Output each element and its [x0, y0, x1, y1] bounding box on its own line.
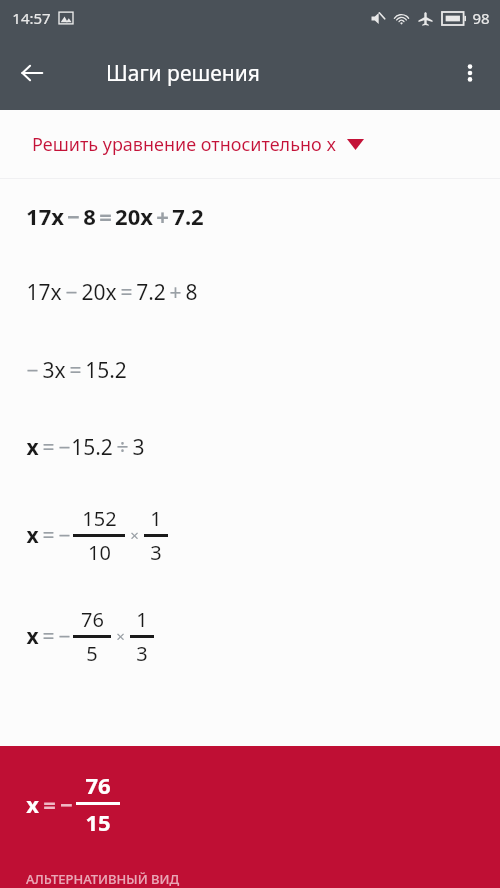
button[interactable]: x: [0, 746, 500, 888]
staticText: 76: [81, 606, 104, 633]
staticText: =: [43, 789, 56, 819]
staticText: 15.2: [71, 433, 113, 462]
staticText: 17x: [26, 278, 62, 307]
staticText: −: [67, 201, 80, 231]
staticText: Шаги решения: [106, 59, 260, 88]
button[interactable]: x: [0, 485, 500, 585]
staticText: Решить уравнение относительно x: [32, 132, 336, 157]
staticText: ÷: [116, 433, 129, 462]
staticText: 152: [82, 505, 117, 532]
staticText: x: [26, 521, 39, 550]
staticText: 7.2: [136, 278, 166, 307]
staticText: x: [26, 789, 39, 819]
staticText: 20x: [81, 278, 117, 307]
staticText: 17x: [26, 201, 64, 231]
staticText: =: [42, 521, 55, 550]
staticText: 14:57: [12, 8, 51, 28]
staticText: =: [42, 622, 55, 651]
staticText: 15.2: [85, 356, 127, 385]
staticText: 20x: [115, 201, 153, 231]
staticText: 15: [85, 807, 111, 837]
staticText: 3: [132, 433, 145, 462]
staticText: 3: [150, 539, 162, 566]
staticText: +: [169, 278, 182, 307]
staticText: 5: [86, 640, 98, 667]
staticText: −: [65, 278, 78, 307]
button[interactable]: More options: [446, 49, 494, 97]
button[interactable]: Back: [8, 49, 56, 97]
staticText: 3: [136, 640, 148, 667]
staticText: 98: [472, 8, 490, 28]
staticText: =: [120, 278, 133, 307]
staticText: +: [156, 201, 169, 231]
staticText: ×: [116, 626, 125, 646]
staticText: АЛЬТЕРНАТИВНЫЙ ВИД: [26, 870, 180, 888]
staticText: 7.2: [172, 201, 204, 231]
button[interactable]: Решить уравнение относительно x: [0, 110, 500, 178]
button[interactable]: 17x: [0, 179, 500, 253]
staticText: −: [58, 521, 71, 550]
staticText: 1: [136, 606, 148, 633]
staticText: 76: [85, 770, 111, 800]
staticText: 1: [150, 505, 162, 532]
staticText: =: [69, 356, 82, 385]
staticText: 8: [83, 201, 96, 231]
button[interactable]: x: [0, 585, 500, 687]
staticText: −: [26, 356, 39, 385]
staticText: 10: [88, 539, 111, 566]
button[interactable]: x: [0, 409, 500, 485]
staticText: −: [60, 789, 73, 819]
staticText: x: [26, 433, 39, 462]
staticText: x: [26, 622, 39, 651]
staticText: −: [58, 433, 71, 462]
staticText: 8: [185, 278, 198, 307]
button[interactable]: 17x: [0, 253, 500, 331]
button[interactable]: −: [0, 331, 500, 409]
staticText: −: [58, 622, 71, 651]
staticText: =: [42, 433, 55, 462]
staticText: =: [99, 201, 112, 231]
staticText: 3x: [42, 356, 66, 385]
staticText: ×: [130, 525, 139, 545]
